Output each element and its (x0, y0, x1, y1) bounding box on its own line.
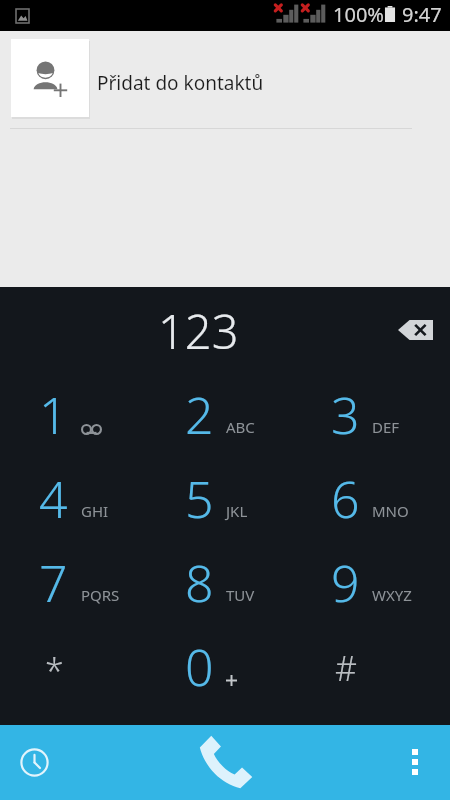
button[interactable]: More options (391, 738, 439, 786)
button[interactable]: Dial pad (190, 727, 261, 798)
button[interactable]: 6 (300, 461, 450, 545)
button[interactable]: 4 (0, 461, 150, 545)
staticText: * (45, 648, 64, 694)
staticText: PQRS (81, 585, 120, 605)
staticText: 2 (185, 381, 214, 443)
button[interactable]: Recent calls (8, 736, 60, 788)
staticText: 1 (39, 381, 68, 443)
button[interactable]: 0 (150, 629, 300, 713)
staticText: 3 (331, 381, 360, 443)
button[interactable]: # (300, 629, 450, 713)
staticText: DEF (372, 417, 400, 437)
button[interactable]: 8 (150, 545, 300, 629)
staticText: GHI (81, 501, 109, 521)
button[interactable]: Backspace (384, 309, 446, 351)
staticText: Přidat do kontaktů (97, 70, 264, 96)
button[interactable]: 7 (0, 545, 150, 629)
staticText: 100% (333, 1, 384, 28)
staticText: WXYZ (372, 585, 412, 605)
staticText: 7 (39, 549, 68, 611)
button[interactable]: 2 (150, 377, 300, 461)
staticText: MNO (372, 501, 409, 521)
staticText: ABC (226, 417, 255, 437)
staticText: 8 (185, 549, 214, 611)
staticText: 123 (158, 299, 239, 363)
button[interactable]: 5 (150, 461, 300, 545)
staticText: 4 (39, 465, 68, 527)
staticText: 5 (185, 465, 214, 527)
staticText: TUV (226, 585, 255, 605)
staticText: 6 (331, 465, 360, 527)
button[interactable]: 9 (300, 545, 450, 629)
staticText: 0 (185, 633, 214, 695)
button[interactable]: Přidat do kontaktů (0, 31, 450, 128)
button[interactable]: 3 (300, 377, 450, 461)
staticText: 9:47 (402, 1, 442, 28)
button[interactable]: 1 (0, 377, 150, 461)
staticText: 9 (331, 549, 360, 611)
staticText: # (335, 645, 357, 691)
staticText: JKL (226, 501, 248, 521)
button[interactable]: * (0, 629, 150, 713)
